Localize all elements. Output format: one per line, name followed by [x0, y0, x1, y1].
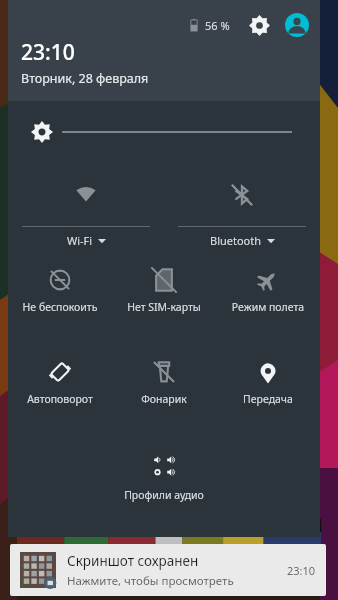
- button[interactable]: Режим полета: [216, 263, 320, 318]
- button[interactable]: Автоповорот: [8, 355, 112, 410]
- staticText: 23:10: [21, 38, 75, 67]
- button[interactable]: Профили аудио: [112, 447, 216, 506]
- button[interactable]: Фонарик: [112, 355, 216, 410]
- button[interactable]: Не беспокоить: [8, 263, 112, 318]
- staticText: Профили аудио: [112, 488, 216, 502]
- staticText: Вторник, 28 февраля: [21, 70, 149, 87]
- staticText: Фонарик: [112, 392, 216, 406]
- staticText: Нет SIM-карты: [112, 300, 216, 314]
- staticText: Режим полета: [216, 300, 320, 314]
- staticText: Wi-Fi: [67, 233, 93, 248]
- staticText: Автоповорот: [8, 392, 112, 406]
- staticText: 56 %: [205, 18, 230, 33]
- button[interactable]: Settings: [246, 12, 272, 38]
- staticText: Нажмите, чтобы просмотреть: [67, 573, 234, 589]
- button[interactable]: Wi-Fi: [8, 163, 164, 253]
- button[interactable]: Передача геоданных: [216, 355, 320, 410]
- button[interactable]: Скриншот сохранен: [10, 544, 326, 596]
- staticText: Bluetooth: [210, 233, 262, 248]
- button[interactable]: Brightness: [8, 101, 320, 163]
- staticText: Передача геоданных: [216, 392, 320, 406]
- button[interactable]: Нет SIM-карты: [112, 263, 216, 318]
- staticText: Не беспокоить: [8, 300, 112, 314]
- staticText: Скриншот сохранен: [67, 552, 199, 570]
- staticText: 23:10: [287, 563, 316, 578]
- button[interactable]: Bluetooth: [164, 163, 320, 253]
- button[interactable]: User profile: [284, 12, 310, 38]
